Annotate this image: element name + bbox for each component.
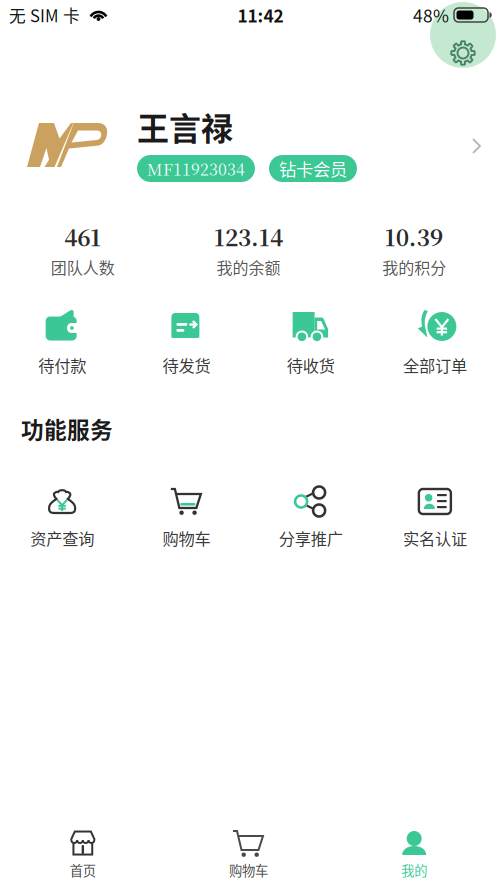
staticText: 我的积分 (382, 255, 446, 279)
staticText: 10.39 (385, 220, 444, 253)
staticText: 团队人数 (51, 255, 115, 279)
button[interactable]: Settings (0, 30, 497, 76)
button[interactable]: 10.39 (331, 224, 497, 276)
button[interactable]: 实名认证 (373, 486, 497, 547)
staticText: 无 SIM 卡 (9, 3, 80, 27)
button[interactable]: 我的 (331, 830, 497, 878)
button[interactable]: 123.14 (166, 224, 331, 276)
staticText: 待付款 (38, 353, 86, 377)
staticText: 购物车 (229, 860, 268, 880)
staticText: 全部订单 (403, 353, 467, 377)
staticText: 购物车 (162, 526, 210, 550)
staticText: 钻卡会员 (279, 156, 347, 181)
staticText: 123.14 (214, 220, 283, 253)
staticText: 11:42 (237, 2, 283, 28)
button[interactable]: 待付款 (0, 309, 124, 374)
staticText: 待收货 (287, 353, 335, 377)
staticText: 资产查询 (30, 526, 94, 550)
staticText: 分享推广 (279, 526, 343, 550)
button[interactable]: 首页 (0, 830, 166, 878)
staticText: 我的 (401, 860, 427, 880)
staticText: 首页 (70, 860, 96, 880)
button[interactable]: 王言禄 (0, 110, 497, 182)
staticText: 待发货 (162, 353, 210, 377)
button[interactable]: 待发货 (124, 309, 249, 374)
button[interactable]: 全部订单 (373, 309, 497, 374)
staticText: 功能服务 (21, 412, 113, 445)
staticText: 王言禄 (137, 103, 233, 150)
staticText: 实名认证 (403, 526, 467, 550)
button[interactable]: 购物车 (124, 486, 249, 547)
button[interactable]: 资产查询 (0, 486, 124, 547)
staticText: 48% (413, 2, 449, 28)
button[interactable]: 分享推广 (248, 486, 373, 547)
button[interactable]: 461 (0, 224, 166, 276)
staticText: MF11923034 (147, 157, 245, 180)
staticText: 461 (64, 220, 101, 253)
button[interactable]: 待收货 (248, 309, 373, 374)
staticText: 我的余额 (216, 255, 280, 279)
button[interactable]: 购物车 (166, 830, 331, 878)
